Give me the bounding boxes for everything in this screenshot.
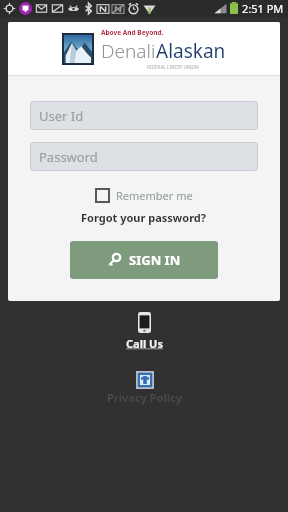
button[interactable]: User Id xyxy=(30,101,258,130)
staticText: SIGN IN xyxy=(129,251,181,269)
staticText: Call Us xyxy=(126,336,163,351)
button[interactable]: Privacy Policy xyxy=(99,369,190,407)
other: Privacy Policy xyxy=(136,371,154,389)
staticText: Privacy Policy xyxy=(107,390,182,405)
button[interactable]: Key xyxy=(70,241,218,279)
button[interactable]: Call Us xyxy=(118,310,171,353)
staticText: 2:51 PM xyxy=(242,1,284,16)
staticText: Password xyxy=(39,148,98,166)
staticText: Denali xyxy=(101,38,156,64)
staticText: Alaskan xyxy=(156,38,226,64)
button[interactable]: Forgot your password? xyxy=(79,208,209,227)
staticText: Above And Beyond. xyxy=(101,28,164,37)
button[interactable]: Password xyxy=(30,142,258,171)
button[interactable]: Remember me xyxy=(93,186,195,205)
other: Key xyxy=(107,253,121,267)
other: Call Us xyxy=(138,312,151,333)
staticText: Remember me xyxy=(116,188,193,203)
staticText: User Id xyxy=(39,107,84,125)
staticText: FEDERAL CREDIT UNION xyxy=(147,64,199,70)
